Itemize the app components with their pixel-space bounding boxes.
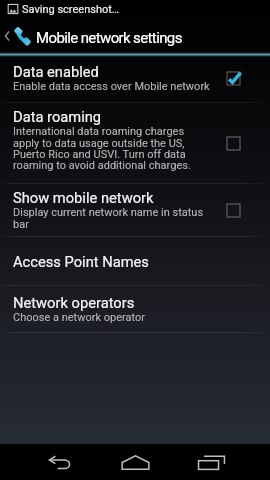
button[interactable]: Recent apps <box>189 444 233 480</box>
button[interactable]: Toggle <box>223 133 243 153</box>
button[interactable]: Show mobile network <box>0 184 270 236</box>
staticText: Saving screenshot… <box>22 3 120 16</box>
button[interactable]: Mobile network settings <box>0 18 270 53</box>
button[interactable]: Home <box>113 444 157 480</box>
staticText: Access Point Names <box>13 253 149 270</box>
button[interactable]: Data enabled <box>0 53 270 102</box>
staticText: Display current network name in status b… <box>13 206 212 231</box>
staticText: Enable data access over Mobile network <box>13 80 210 93</box>
staticText: Choose a network operator <box>13 311 146 324</box>
button[interactable]: Data roaming <box>0 103 270 183</box>
button[interactable]: Toggle <box>223 200 243 220</box>
button[interactable]: Network operators <box>0 286 270 332</box>
staticText: Show mobile network <box>13 189 154 206</box>
staticText: Data enabled <box>13 63 99 80</box>
staticText: Network operators <box>13 294 135 311</box>
staticText: Mobile network settings <box>36 29 182 47</box>
button[interactable]: Back <box>37 444 81 480</box>
staticText: International data roaming charges apply… <box>13 125 212 172</box>
staticText: Data roaming <box>13 108 102 125</box>
button[interactable]: Toggle <box>223 68 243 88</box>
button[interactable]: Access Point Names <box>0 237 270 285</box>
